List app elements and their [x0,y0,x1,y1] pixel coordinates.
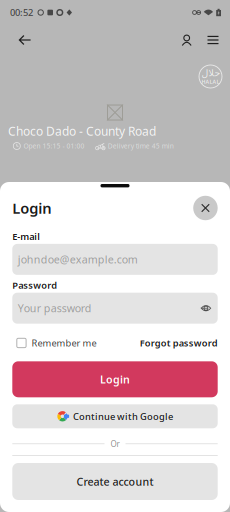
staticText: Delivery time 45 min [108,142,174,150]
staticText: HALAL [201,78,219,85]
button[interactable]: Forgot password [140,337,218,349]
staticText: Password [12,279,57,291]
staticText: Open 15:15 - 01:00 [23,142,84,150]
staticText: Your password [18,301,92,315]
staticText: Remember me [32,337,97,349]
button[interactable]: Remember me [12,338,97,348]
staticText: Create account [76,474,153,489]
staticText: Login [12,198,51,218]
button[interactable]: Create account [12,463,218,500]
button[interactable]: Continue with Google [12,404,218,428]
staticText: johndoe@example.com [18,252,138,266]
staticText: Forgot password [140,337,218,349]
button[interactable]: Back [0,26,41,54]
staticText: Login [100,372,130,386]
staticText: 00:52 [10,6,33,19]
staticText: حلال [201,68,220,78]
button[interactable]: Close [193,196,218,220]
staticText: Choco Dado - County Road [8,123,156,139]
button[interactable]: Menu [199,28,230,52]
button[interactable]: Login [12,361,218,397]
staticText: Continue with Google [73,410,173,422]
staticText: Or [110,438,119,449]
staticText: E-mail [12,230,40,243]
button[interactable]: Account [174,26,199,53]
image [107,104,123,120]
